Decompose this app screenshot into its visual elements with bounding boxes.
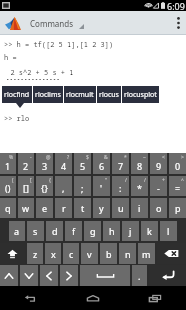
staticText: 9 (156, 160, 162, 172)
staticText: rlocus (99, 90, 119, 100)
button[interactable]: rlocmult (64, 86, 96, 103)
staticText: d (52, 225, 58, 237)
button[interactable]: Enter (149, 265, 186, 286)
button[interactable]: u (112, 198, 129, 218)
button[interactable]: 7 (112, 153, 129, 174)
button[interactable]: s (27, 221, 44, 241)
staticText: : (119, 182, 122, 194)
staticText: a (14, 225, 20, 237)
button[interactable]: k (141, 221, 158, 241)
button[interactable]: 0 (169, 153, 186, 174)
staticText: >> h = tf([2 5 1],[1 2 3]) (4, 40, 114, 50)
button[interactable]: w (18, 198, 34, 218)
staticText: r (62, 202, 66, 214)
button[interactable]: x (45, 243, 61, 264)
button[interactable]: e (36, 198, 53, 218)
button[interactable]: r (55, 198, 72, 218)
button[interactable]: p (169, 198, 186, 218)
staticText: 7 (118, 160, 124, 172)
staticText: 6 (99, 160, 105, 172)
staticText: * (124, 154, 127, 161)
staticText: () (5, 182, 11, 194)
button[interactable]: t (74, 198, 91, 218)
button[interactable]: 8 (131, 153, 148, 174)
button[interactable]: Right (60, 265, 78, 286)
button[interactable]: d (46, 221, 63, 241)
staticText: t (81, 202, 85, 214)
button[interactable]: () (0, 176, 16, 196)
button[interactable]: Commands (0, 11, 186, 35)
button[interactable]: ' (93, 176, 110, 196)
button[interactable]: f (65, 221, 82, 241)
button[interactable]: g (84, 221, 101, 241)
button[interactable]: q (0, 198, 16, 218)
staticText: 8 (137, 160, 143, 172)
staticText: {} (41, 182, 48, 194)
button[interactable]: rlocusplot (122, 86, 159, 103)
staticText: ; (81, 182, 84, 194)
button[interactable]: l (160, 221, 177, 241)
button[interactable]: * (131, 176, 148, 196)
staticText: = (175, 182, 181, 194)
button[interactable]: [] (18, 176, 34, 196)
button[interactable]: h (103, 221, 120, 241)
button[interactable]: 1 (0, 153, 16, 174)
staticText: 6:09 (167, 0, 185, 11)
button[interactable]: rloclims (33, 86, 63, 103)
button[interactable]: j (122, 221, 139, 241)
staticText: - (157, 182, 160, 194)
staticText: 4 (61, 160, 67, 172)
button[interactable]: n (119, 243, 136, 264)
button[interactable]: Shift (0, 243, 25, 264)
staticText: n (125, 248, 131, 260)
staticText: q (5, 202, 11, 214)
staticText: x (51, 248, 56, 260)
staticText: w (22, 202, 30, 214)
staticText: ~ (143, 154, 146, 161)
button[interactable]: a (9, 221, 25, 241)
button[interactable]: 6 (93, 153, 110, 174)
button[interactable]: m (138, 243, 155, 264)
button[interactable]: ; (74, 176, 91, 196)
button[interactable]: : (112, 176, 129, 196)
staticText: >> rlo (4, 114, 30, 124)
button[interactable]: 2 (18, 153, 34, 174)
staticText: l (167, 225, 170, 237)
button[interactable]: Recents (124, 286, 186, 310)
button[interactable]: More options (170, 11, 186, 35)
button[interactable]: rlocfind (2, 86, 32, 103)
staticText: g (90, 225, 96, 237)
button[interactable]: y (93, 198, 110, 218)
staticText: ' (100, 182, 103, 194)
button[interactable]: 5 (74, 153, 91, 174)
staticText: % (9, 154, 14, 161)
button[interactable]: 3 (36, 153, 53, 174)
button[interactable]: Space (80, 265, 130, 286)
button[interactable]: - (150, 176, 167, 196)
button[interactable]: v (81, 243, 98, 264)
button[interactable]: o (150, 198, 167, 218)
button[interactable]: b (100, 243, 117, 264)
button[interactable]: , (55, 176, 72, 196)
button[interactable]: = (169, 176, 186, 196)
staticText: k (147, 225, 152, 237)
staticText: ( (12, 177, 14, 184)
button[interactable]: Backspace (157, 243, 186, 264)
button[interactable]: Up (0, 265, 18, 286)
button[interactable]: . (132, 265, 147, 286)
staticText: - (30, 154, 32, 161)
button[interactable]: Back (0, 286, 62, 310)
button[interactable]: Down (20, 265, 38, 286)
button[interactable]: Home (62, 286, 124, 310)
staticText: 3 (42, 160, 48, 172)
button[interactable]: rlocus (97, 86, 121, 103)
button[interactable]: 9 (150, 153, 167, 174)
staticText: rlocusplot (124, 90, 157, 100)
button[interactable]: {} (36, 176, 53, 196)
staticText: Commands (30, 18, 74, 29)
button[interactable]: z (27, 243, 43, 264)
button[interactable]: c (63, 243, 79, 264)
button[interactable]: i (131, 198, 148, 218)
button[interactable]: 4 (55, 153, 72, 174)
button[interactable]: Left (40, 265, 58, 286)
